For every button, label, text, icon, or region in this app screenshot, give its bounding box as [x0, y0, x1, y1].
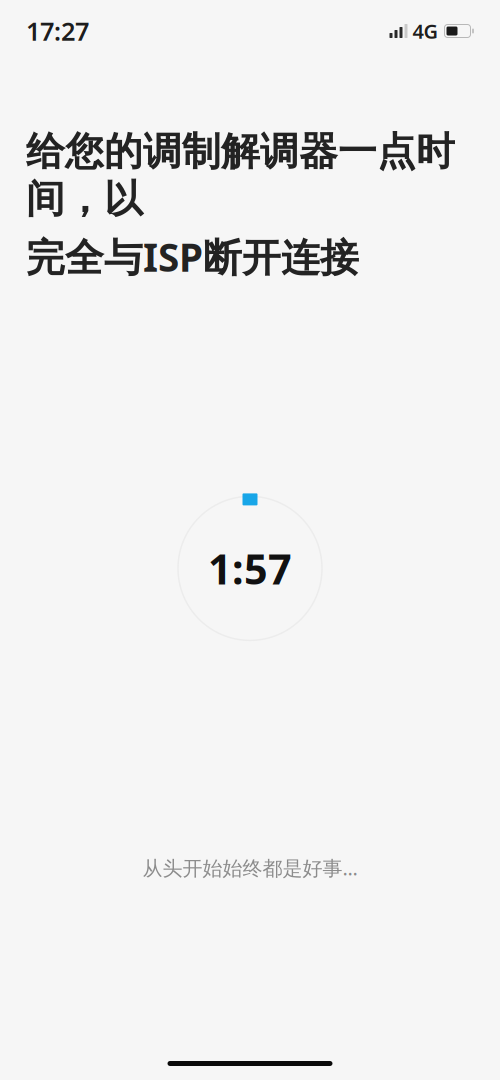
staticText: 从头开始始终都是好事...: [142, 854, 357, 881]
staticText: 给您的调制解调器一点时间，以: [26, 128, 455, 223]
staticText: 17:27: [26, 14, 89, 48]
staticText: 1:57: [208, 541, 292, 596]
staticText: 4G: [412, 18, 438, 44]
staticText: 完全与ISP断开连接: [26, 231, 359, 282]
